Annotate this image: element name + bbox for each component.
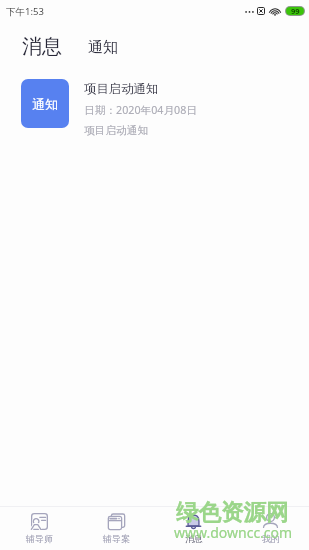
staticText: 绿色资源网: [176, 498, 289, 526]
staticText: 辅导案: [103, 533, 130, 544]
button[interactable]: 消息: [0, 30, 72, 67]
staticText: 日期：2020年04月08日: [84, 103, 198, 118]
staticText: 项目启动通知: [84, 81, 159, 97]
button[interactable]: 通知: [84, 34, 128, 67]
button[interactable]: 辅导案: [78, 507, 155, 550]
button[interactable]: 通知: [0, 67, 309, 145]
button[interactable]: 辅导师: [0, 507, 78, 550]
staticText: 通知: [88, 38, 118, 57]
staticText: 通知: [32, 96, 58, 112]
staticText: 辅导师: [26, 533, 53, 544]
staticText: 消息: [185, 533, 203, 544]
staticText: 项目启动通知: [84, 124, 149, 137]
staticText: www.downcc.com: [174, 523, 293, 542]
staticText: 我的: [262, 533, 280, 544]
staticText: 99: [291, 6, 300, 16]
button[interactable]: 消息: [155, 507, 232, 550]
button[interactable]: 我的: [232, 507, 309, 550]
staticText: 消息: [22, 34, 62, 59]
staticText: 下午1:53: [6, 5, 44, 18]
